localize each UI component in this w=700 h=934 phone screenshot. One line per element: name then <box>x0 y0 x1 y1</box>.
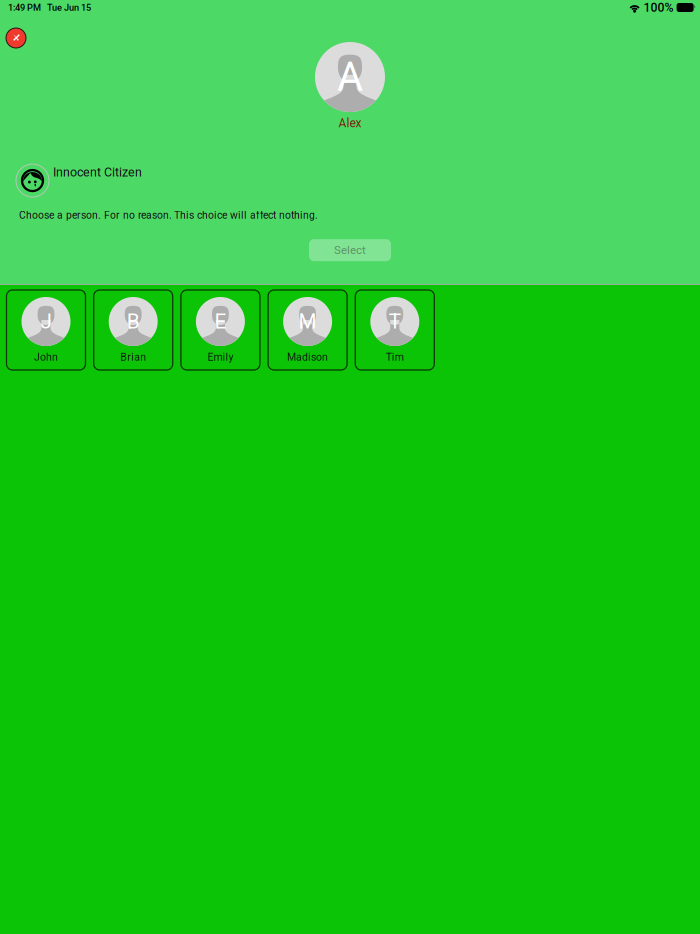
staticText: T <box>389 309 401 334</box>
button[interactable]: Close <box>5 27 27 49</box>
button[interactable]: J <box>6 290 85 370</box>
staticText: E <box>214 309 226 334</box>
staticText: M <box>299 309 317 334</box>
staticText: Emily <box>207 351 233 363</box>
button[interactable]: M <box>268 290 347 370</box>
staticText: John <box>34 351 58 363</box>
button[interactable]: Select <box>309 239 391 261</box>
staticText: Brian <box>120 351 146 363</box>
staticText: 100% <box>644 0 674 15</box>
button[interactable]: B <box>94 290 173 370</box>
staticText: Choose a person. For no reason. This cho… <box>19 209 318 221</box>
staticText: A <box>337 54 363 100</box>
staticText: B <box>127 309 140 334</box>
staticText: Alex <box>338 116 361 130</box>
button[interactable]: E <box>181 290 260 370</box>
staticText: Madison <box>287 351 328 363</box>
staticText: Select <box>334 243 366 257</box>
staticText: J <box>40 309 51 334</box>
staticText: Tim <box>386 351 404 363</box>
button[interactable]: T <box>355 290 434 370</box>
staticText: Innocent Citizen <box>53 165 142 180</box>
staticText: 1:49 PM Tue Jun 15 <box>8 2 91 13</box>
